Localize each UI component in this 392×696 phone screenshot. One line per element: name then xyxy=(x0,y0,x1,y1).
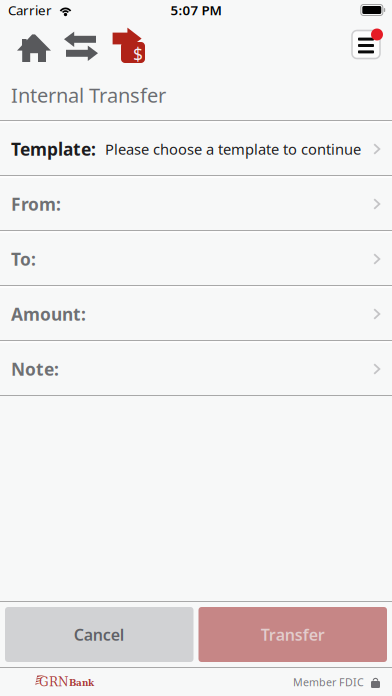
staticText: Template: xyxy=(11,137,96,160)
staticText: Amount: xyxy=(11,302,86,325)
staticText: Note: xyxy=(11,357,59,380)
button[interactable]: Internal Transfer xyxy=(98,27,145,63)
staticText: Internal Transfer xyxy=(11,82,166,108)
button[interactable]: To: xyxy=(0,231,392,286)
staticText: Carrier xyxy=(8,1,52,19)
button[interactable]: Cancel xyxy=(5,607,193,662)
button[interactable]: Note: xyxy=(0,341,392,396)
staticText: 5:07 PM xyxy=(170,1,221,19)
staticText: Bank xyxy=(69,678,94,688)
staticText: Cancel xyxy=(74,624,125,645)
staticText: From: xyxy=(11,192,61,215)
button[interactable]: Template: xyxy=(0,121,392,176)
button[interactable]: Transfer xyxy=(198,607,387,662)
staticText: Member FDIC xyxy=(293,675,364,689)
staticText: To: xyxy=(11,247,36,270)
staticText: Please choose a template to continue xyxy=(105,139,361,159)
button[interactable]: Home xyxy=(0,28,51,62)
button[interactable]: Menu xyxy=(351,26,392,63)
button[interactable]: From: xyxy=(0,176,392,231)
button[interactable]: Amount: xyxy=(0,286,392,341)
staticText: GRN xyxy=(39,675,69,689)
button[interactable]: Transfers xyxy=(51,28,98,62)
staticText: Transfer xyxy=(261,624,325,645)
staticText: $ xyxy=(133,42,143,65)
